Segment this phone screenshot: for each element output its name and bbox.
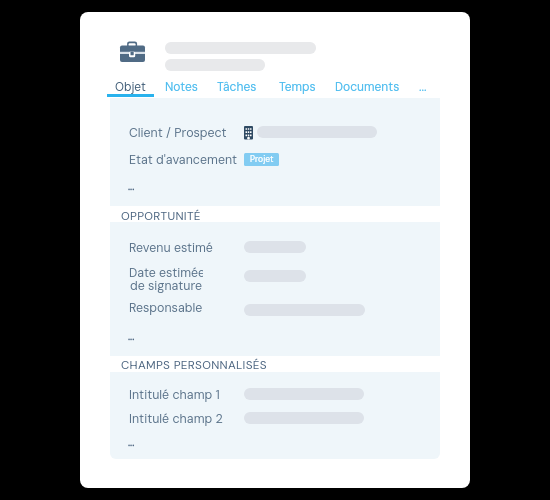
other: Opportunity — [120, 41, 145, 62]
staticText: ... — [419, 79, 427, 95]
button[interactable]: Notes — [154, 68, 209, 97]
staticText: Objet — [115, 79, 146, 95]
button[interactable]: Tâches — [206, 68, 268, 97]
staticText: OPPORTUNITÉ — [121, 208, 201, 223]
staticText: Projet — [250, 154, 274, 165]
button[interactable]: Projet — [244, 153, 279, 166]
staticText: ... — [128, 436, 135, 449]
button[interactable]: ... — [408, 68, 438, 97]
staticText: Date estimée — [129, 265, 203, 281]
staticText: Etat d'avancement — [129, 152, 238, 168]
button[interactable]: Temps — [268, 68, 326, 97]
staticText: Revenu estimé — [129, 240, 213, 256]
staticText: Intitulé champ 1 — [129, 387, 220, 403]
staticText: CHAMPS PERSONNALISÉS — [121, 357, 267, 372]
button[interactable]: Documents — [324, 68, 410, 97]
staticText: Intitulé champ 2 — [129, 411, 223, 427]
staticText: Notes — [165, 79, 198, 95]
staticText: Client / Prospect — [129, 125, 227, 141]
staticText: Responsable — [129, 300, 203, 316]
staticText: Temps — [279, 79, 316, 95]
staticText: Documents — [335, 79, 400, 95]
staticText: ... — [128, 330, 135, 343]
button[interactable]: Objet — [107, 68, 154, 97]
staticText: ... — [128, 180, 135, 193]
staticText: de signature — [130, 278, 203, 294]
staticText: Tâches — [217, 79, 257, 95]
